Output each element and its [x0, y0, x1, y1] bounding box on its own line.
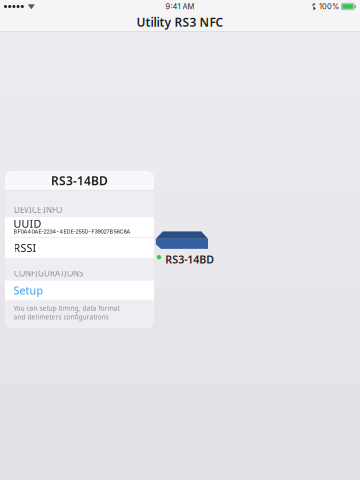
- staticText: 9:41 AM: [165, 2, 194, 11]
- button[interactable]: RSSI: [5, 238, 154, 258]
- staticText: CONFIGURATIONS: [14, 268, 83, 279]
- staticText: BF0A40AE-2234-4EDE-255D-F39027B56C8A: [13, 228, 130, 235]
- staticText: RS3-14BD: [165, 252, 214, 267]
- button[interactable]: UUID: [5, 217, 154, 237]
- staticText: 100%: [319, 2, 339, 11]
- staticText: Setup: [13, 283, 43, 297]
- staticText: UUID: [13, 217, 41, 231]
- staticText: You can setup timing, data format and de…: [13, 304, 119, 321]
- button[interactable]: Setup: [5, 281, 154, 300]
- staticText: DEVICE INFO: [14, 204, 62, 215]
- staticText: Utility RS3 NFC: [136, 14, 223, 30]
- staticText: RS3-14BD: [51, 172, 108, 188]
- staticText: RSSI: [13, 241, 36, 255]
